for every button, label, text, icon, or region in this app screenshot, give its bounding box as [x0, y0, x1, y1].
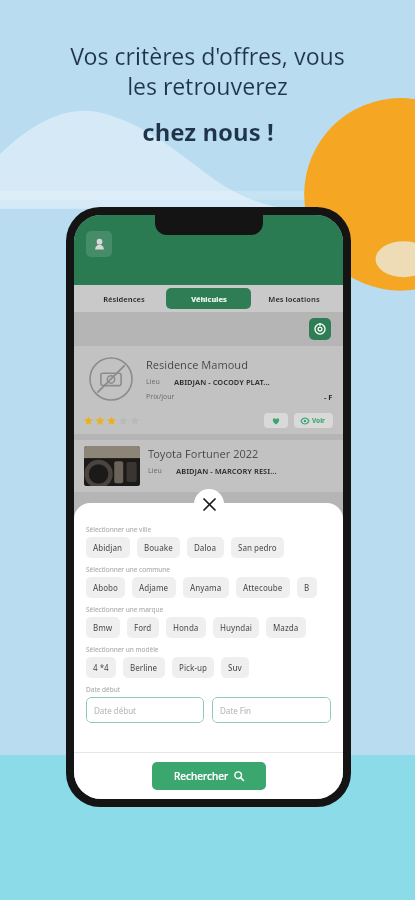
- button[interactable]: Suv: [221, 657, 249, 678]
- staticText: Date début: [86, 685, 121, 694]
- staticText: Attecoube: [243, 582, 283, 593]
- button[interactable]: Residence Mamoud: [74, 346, 343, 434]
- staticText: Sélectionner une marque: [86, 605, 164, 614]
- staticText: Mazda: [273, 622, 299, 633]
- button[interactable]: Mazda: [266, 617, 306, 638]
- staticText: Mes locations: [268, 294, 320, 304]
- staticText: ABIDJAN - MARCORY RESI...: [176, 466, 277, 476]
- staticText: Ford: [134, 622, 152, 633]
- staticText: Rechercher: [174, 769, 229, 783]
- staticText: San pedro: [238, 542, 277, 553]
- staticText: Abidjan: [93, 542, 123, 553]
- button[interactable]: Profil: [86, 231, 112, 257]
- button[interactable]: Date Fin: [212, 697, 331, 723]
- staticText: Pick-up: [179, 662, 207, 673]
- button[interactable]: Date début: [86, 697, 204, 723]
- button[interactable]: Toyota Fortuner 2022: [74, 440, 343, 492]
- button[interactable]: Adjame: [132, 577, 176, 598]
- button[interactable]: Bouake: [137, 537, 180, 558]
- button[interactable]: Anyama: [183, 577, 229, 598]
- staticText: chez nous !: [142, 115, 274, 148]
- staticText: Voir: [312, 416, 326, 425]
- staticText: Residence Mamoud: [146, 357, 248, 372]
- button[interactable]: Bmw: [86, 617, 120, 638]
- staticText: Sélectionner une commune: [86, 565, 171, 574]
- button[interactable]: B: [297, 577, 317, 598]
- staticText: Bouake: [144, 542, 173, 553]
- button[interactable]: Résidences: [81, 288, 166, 309]
- staticText: Vos critères d'offres, vous les retrouve…: [70, 40, 345, 101]
- button[interactable]: Véhicules: [166, 288, 251, 309]
- staticText: - F: [324, 392, 333, 402]
- button[interactable]: Rechercher: [152, 762, 266, 790]
- staticText: Toyota Fortuner 2022: [148, 446, 259, 461]
- button[interactable]: 4 *4: [86, 657, 116, 678]
- staticText: ABIDJAN - COCODY PLAT...: [174, 377, 270, 387]
- staticText: Lieu: [146, 377, 160, 387]
- staticText: Huyndai: [220, 622, 252, 633]
- staticText: B: [304, 582, 310, 593]
- staticText: Adjame: [139, 582, 169, 593]
- staticText: 4 *4: [93, 662, 109, 673]
- button[interactable]: Huyndai: [213, 617, 259, 638]
- button[interactable]: Mes locations: [251, 288, 336, 309]
- staticText: Date début: [94, 705, 136, 716]
- button[interactable]: San pedro: [231, 537, 284, 558]
- staticText: Sélectionner un modèle: [86, 645, 159, 654]
- staticText: Berline: [130, 662, 158, 673]
- staticText: Honda: [173, 622, 199, 633]
- button[interactable]: Abidjan: [86, 537, 130, 558]
- staticText: Lieu: [148, 466, 162, 476]
- button[interactable]: Favori: [264, 413, 288, 428]
- staticText: Daloa: [194, 542, 217, 553]
- staticText: Résidences: [103, 294, 145, 304]
- button[interactable]: Honda: [166, 617, 206, 638]
- staticText: Suv: [228, 662, 242, 673]
- staticText: Bmw: [93, 622, 113, 633]
- button[interactable]: Berline: [123, 657, 165, 678]
- button[interactable]: Voir: [294, 413, 333, 428]
- button[interactable]: Filtrer: [309, 318, 331, 340]
- staticText: Anyama: [190, 582, 222, 593]
- button[interactable]: Daloa: [187, 537, 224, 558]
- button[interactable]: Abobo: [86, 577, 125, 598]
- button[interactable]: Pick-up: [172, 657, 214, 678]
- staticText: Sélectionner une ville: [86, 525, 152, 534]
- button[interactable]: Fermer: [194, 489, 224, 519]
- button[interactable]: Attecoube: [236, 577, 290, 598]
- staticText: Abobo: [93, 582, 118, 593]
- staticText: Véhicules: [191, 294, 227, 304]
- staticText: Date Fin: [220, 705, 251, 716]
- staticText: Prix/jour: [146, 392, 175, 402]
- button[interactable]: Ford: [127, 617, 159, 638]
